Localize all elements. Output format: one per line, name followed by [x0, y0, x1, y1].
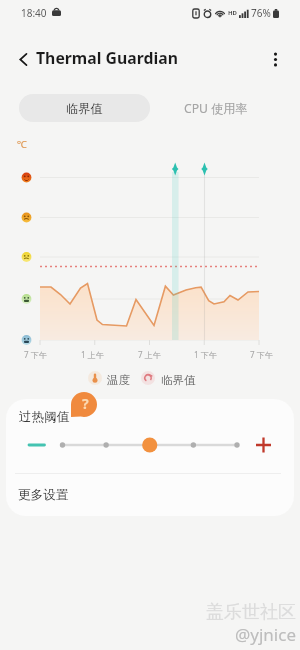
staticText: HD [228, 9, 237, 17]
staticText: 7 下午 [250, 349, 273, 360]
button[interactable]: Back [7, 43, 39, 75]
staticText: 1 下午 [194, 349, 217, 360]
staticText: 温度 [107, 373, 130, 387]
button[interactable]: 临界值 [19, 94, 150, 122]
button[interactable]: CPU 使用率 [150, 94, 281, 122]
staticText: 过热阈值 [19, 409, 70, 425]
staticText: 更多设置 [18, 487, 69, 503]
staticText: @yjnice [235, 623, 296, 646]
staticText: 7 下午 [24, 349, 47, 360]
staticText: 76% [251, 6, 271, 20]
staticText: 盖乐世社区 [206, 601, 296, 624]
staticText: CPU 使用率 [184, 100, 248, 117]
staticText: ℃ [17, 137, 27, 151]
staticText: 1 上午 [81, 349, 104, 360]
button[interactable]: More options [259, 43, 291, 75]
staticText: 临界值 [161, 373, 196, 387]
staticText: 18:40 [21, 6, 47, 20]
staticText: ? [82, 394, 89, 413]
button[interactable]: 更多设置 [6, 474, 294, 516]
staticText: 7 上午 [138, 349, 161, 360]
staticText: Thermal Guardian [36, 47, 178, 69]
button[interactable]: Help [71, 392, 97, 417]
staticText: 临界值 [66, 101, 103, 116]
